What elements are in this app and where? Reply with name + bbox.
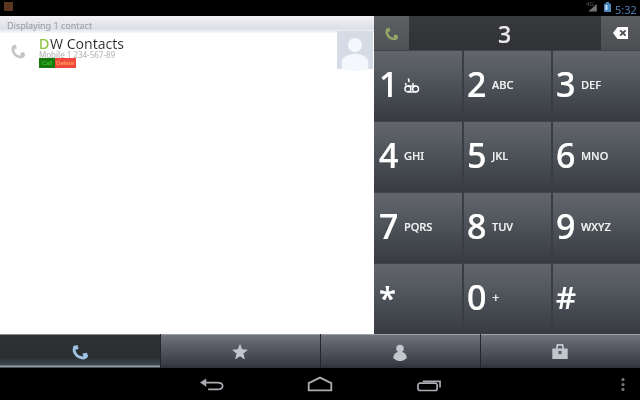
button[interactable]: 7: [374, 192, 462, 263]
button[interactable]: 3: [551, 50, 640, 121]
staticText: +: [492, 288, 500, 306]
staticText: 7: [379, 203, 399, 249]
button[interactable]: 1: [374, 50, 462, 121]
button[interactable]: Backspace: [601, 16, 640, 50]
button[interactable]: Favorites: [160, 334, 320, 368]
staticText: ABC: [492, 77, 514, 92]
button[interactable]: 8: [462, 192, 551, 263]
button[interactable]: Groups: [480, 334, 640, 368]
staticText: 9: [556, 203, 576, 249]
staticText: 2: [467, 61, 487, 107]
button[interactable]: Back: [186, 372, 238, 396]
button[interactable]: 5: [462, 121, 551, 192]
button[interactable]: 4: [374, 121, 462, 192]
staticText: WXYZ: [581, 219, 611, 234]
staticText: DEF: [581, 77, 601, 92]
button[interactable]: More options: [612, 372, 634, 396]
staticText: 5:32: [615, 2, 637, 17]
staticText: 4: [379, 132, 399, 178]
staticText: 5: [467, 132, 487, 178]
staticText: MNO: [581, 148, 609, 163]
staticText: GHI: [404, 148, 425, 163]
staticText: 4G: [586, 0, 594, 8]
button[interactable]: Call: [374, 16, 409, 50]
staticText: Call: [42, 59, 53, 67]
button[interactable]: Home: [294, 372, 346, 396]
button[interactable]: Contacts: [320, 334, 480, 368]
staticText: 6: [556, 132, 576, 178]
staticText: 1: [379, 61, 399, 107]
staticText: 3: [556, 61, 576, 107]
staticText: 3: [498, 18, 512, 49]
button[interactable]: 9: [551, 192, 640, 263]
staticText: #: [556, 276, 577, 318]
staticText: W Contacts: [50, 34, 125, 53]
staticText: TUV: [492, 219, 514, 234]
staticText: D: [39, 34, 50, 53]
staticText: JKL: [492, 148, 509, 163]
button[interactable]: 2: [462, 50, 551, 121]
staticText: Delete: [56, 59, 75, 67]
button[interactable]: *: [374, 263, 462, 334]
button[interactable]: [0, 33, 374, 88]
staticText: Displaying 1 contact: [7, 19, 93, 31]
button[interactable]: Recents: [403, 372, 455, 396]
button[interactable]: 6: [551, 121, 640, 192]
button[interactable]: Phone: [0, 334, 160, 368]
button[interactable]: 0: [462, 263, 551, 334]
staticText: *: [379, 276, 396, 318]
staticText: 8: [467, 203, 487, 249]
staticText: 0: [467, 274, 487, 320]
button[interactable]: #: [551, 263, 640, 334]
staticText: Mobile 1 234-567-89: [39, 49, 116, 60]
staticText: PQRS: [404, 219, 433, 234]
